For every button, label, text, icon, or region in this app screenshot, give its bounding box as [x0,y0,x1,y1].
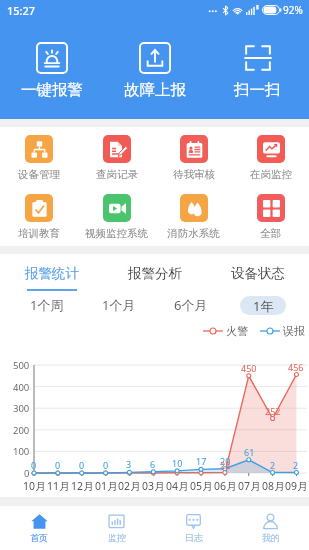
button[interactable]: 待我审核 [155,127,232,186]
button[interactable]: 日志 [155,506,232,550]
staticText: 450 [241,362,257,374]
button[interactable]: 我的 [232,506,309,550]
button[interactable]: 消防水系统 [155,186,232,246]
button[interactable]: 误报 [260,324,305,338]
staticText: 2 [270,459,276,471]
button[interactable]: 火警 [203,324,248,338]
staticText: 0 [31,459,37,471]
staticText: 10月 [23,479,46,493]
staticText: 日志 [185,532,203,543]
staticText: 92% [283,3,303,17]
button[interactable]: 设备状态 [206,254,309,292]
staticText: 监控 [108,532,126,543]
button[interactable]: 报警分析 [103,254,206,292]
button[interactable]: 扫一扫 [206,20,309,119]
staticText: 10 [172,457,183,469]
staticText: 1个月 [102,296,136,314]
button[interactable]: 查岗记录 [78,127,155,186]
staticText: 消防水系统 [167,227,220,240]
button[interactable]: 6个月 [164,293,218,317]
staticText: 12月 [71,479,94,493]
staticText: 待我审核 [173,168,215,181]
staticText: 报警统计 [25,265,79,282]
staticText: 61 [244,446,255,458]
staticText: 设备管理 [18,168,60,181]
staticText: 在岗监控 [250,168,292,181]
staticText: 500 [13,359,30,372]
staticText: 6个月 [174,296,208,314]
staticText: 全部 [260,227,281,240]
button[interactable]: 全部 [232,186,309,246]
staticText: 我的 [262,532,280,543]
staticText: 2 [293,459,299,471]
staticText: 0 [103,459,109,471]
staticText: 300 [13,402,30,415]
staticText: 扫一扫 [234,80,281,100]
staticText: 误报 [283,324,305,338]
button[interactable]: 1个月 [92,293,146,317]
staticText: 01月 [95,479,118,493]
staticText: 0 [79,459,85,471]
staticText: 200 [13,424,30,437]
staticText: 03月 [142,479,165,493]
staticText: 02月 [118,479,141,493]
staticText: 故障上报 [124,80,186,100]
button[interactable]: 1个周 [20,293,74,317]
staticText: 08月 [262,479,285,493]
staticText: 查岗记录 [96,168,138,181]
staticText: 1个周 [30,296,64,314]
staticText: 05月 [190,479,213,493]
staticText: 06月 [214,479,237,493]
staticText: 报警分析 [128,265,182,282]
staticText: 22 [220,459,231,471]
staticText: 456 [288,361,304,373]
staticText: 100 [13,445,30,458]
staticText: 0 [24,467,30,480]
staticText: 20 [220,455,231,467]
button[interactable]: 报警统计 [0,254,103,292]
staticText: 17 [196,455,207,467]
staticText: 0 [55,459,61,471]
staticText: 一键报警 [21,80,83,100]
button[interactable]: 1年 [240,296,286,315]
staticText: 09月 [285,479,308,493]
button[interactable]: 设备管理 [0,127,78,186]
staticText: 04月 [166,479,189,493]
staticText: 首页 [30,532,48,543]
staticText: 设备状态 [231,265,285,282]
staticText: 培训教育 [18,227,60,240]
button[interactable]: 在岗监控 [232,127,309,186]
staticText: 火警 [226,324,248,338]
button[interactable]: 视频监控系统 [78,186,155,246]
staticText: 3 [126,458,132,470]
staticText: 1年 [253,297,274,315]
staticText: 07月 [238,479,261,493]
staticText: 15:27 [7,3,36,18]
button[interactable]: 监控 [78,506,155,550]
button[interactable]: 培训教育 [0,186,78,246]
button[interactable]: 故障上报 [103,20,206,119]
staticText: 6 [150,458,156,470]
staticText: 视频监控系统 [85,227,148,240]
staticText: 252 [265,405,281,417]
staticText: 400 [13,381,30,394]
button[interactable]: 首页 [0,506,78,550]
button[interactable]: 一键报警 [0,20,103,119]
staticText: 11月 [47,479,70,493]
